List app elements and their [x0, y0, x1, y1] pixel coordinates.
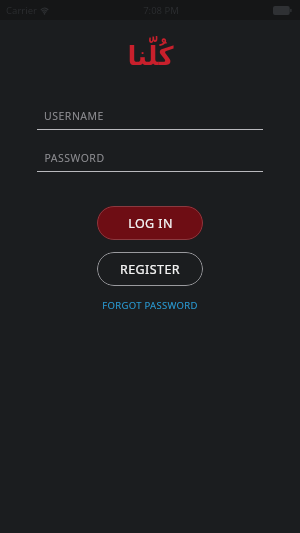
staticText: LOG IN — [128, 215, 173, 232]
staticText: PASSWORD — [44, 151, 105, 165]
button[interactable]: LOG IN — [97, 206, 203, 240]
staticText: Carrier — [6, 4, 37, 17]
button[interactable]: FORGOT PASSWORD — [96, 297, 204, 314]
other: Battery full — [273, 6, 292, 15]
button[interactable]: PASSWORD — [37, 144, 263, 172]
staticText: REGISTER — [120, 261, 180, 278]
staticText: USERNAME — [44, 109, 104, 123]
button[interactable]: USERNAME — [37, 102, 263, 130]
staticText: FORGOT PASSWORD — [102, 299, 198, 312]
other: Wi-Fi signal — [40, 6, 49, 15]
button[interactable]: REGISTER — [97, 252, 203, 286]
staticText: كُلّنا — [127, 41, 174, 71]
staticText: 7:08 PM — [143, 4, 179, 17]
